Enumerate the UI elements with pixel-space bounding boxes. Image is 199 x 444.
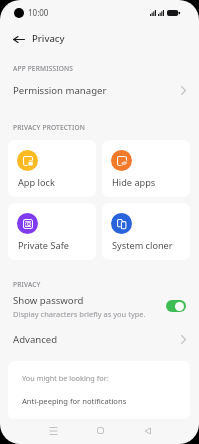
staticText: APP PERMISSIONS	[13, 64, 74, 73]
button[interactable]: Permission manager	[0, 78, 199, 102]
button[interactable]: System cloner	[102, 203, 190, 260]
button[interactable]: App lock	[8, 140, 96, 197]
staticText: Hide apps	[112, 176, 156, 189]
staticText: Private Safe	[18, 239, 69, 252]
button[interactable]: Back	[10, 30, 28, 48]
button[interactable]: Recents	[29, 418, 77, 443]
button[interactable]: Private Safe	[8, 203, 96, 260]
staticText: Show password	[13, 294, 84, 307]
button[interactable]: Back	[124, 418, 171, 443]
staticText: App lock	[18, 176, 55, 189]
staticText: System cloner	[112, 239, 173, 252]
button[interactable]: Home	[77, 418, 124, 443]
button[interactable]: Advanced	[0, 328, 199, 350]
staticText: Display characters briefly as you type.	[13, 309, 146, 319]
staticText: Anti-peeping for notifications	[22, 396, 127, 406]
staticText: 10:00	[28, 7, 49, 18]
staticText: Privacy	[32, 32, 65, 45]
staticText: PRIVACY PROTECTION	[13, 123, 86, 132]
staticText: Permission manager	[13, 84, 107, 97]
staticText: PRIVACY	[13, 280, 41, 289]
staticText: Advanced	[13, 333, 58, 346]
button[interactable]: Show password	[0, 291, 199, 321]
button[interactable]: Hide apps	[102, 140, 190, 197]
staticText: You might be looking for:	[22, 373, 109, 383]
button[interactable]: You might be looking for:	[8, 361, 190, 419]
